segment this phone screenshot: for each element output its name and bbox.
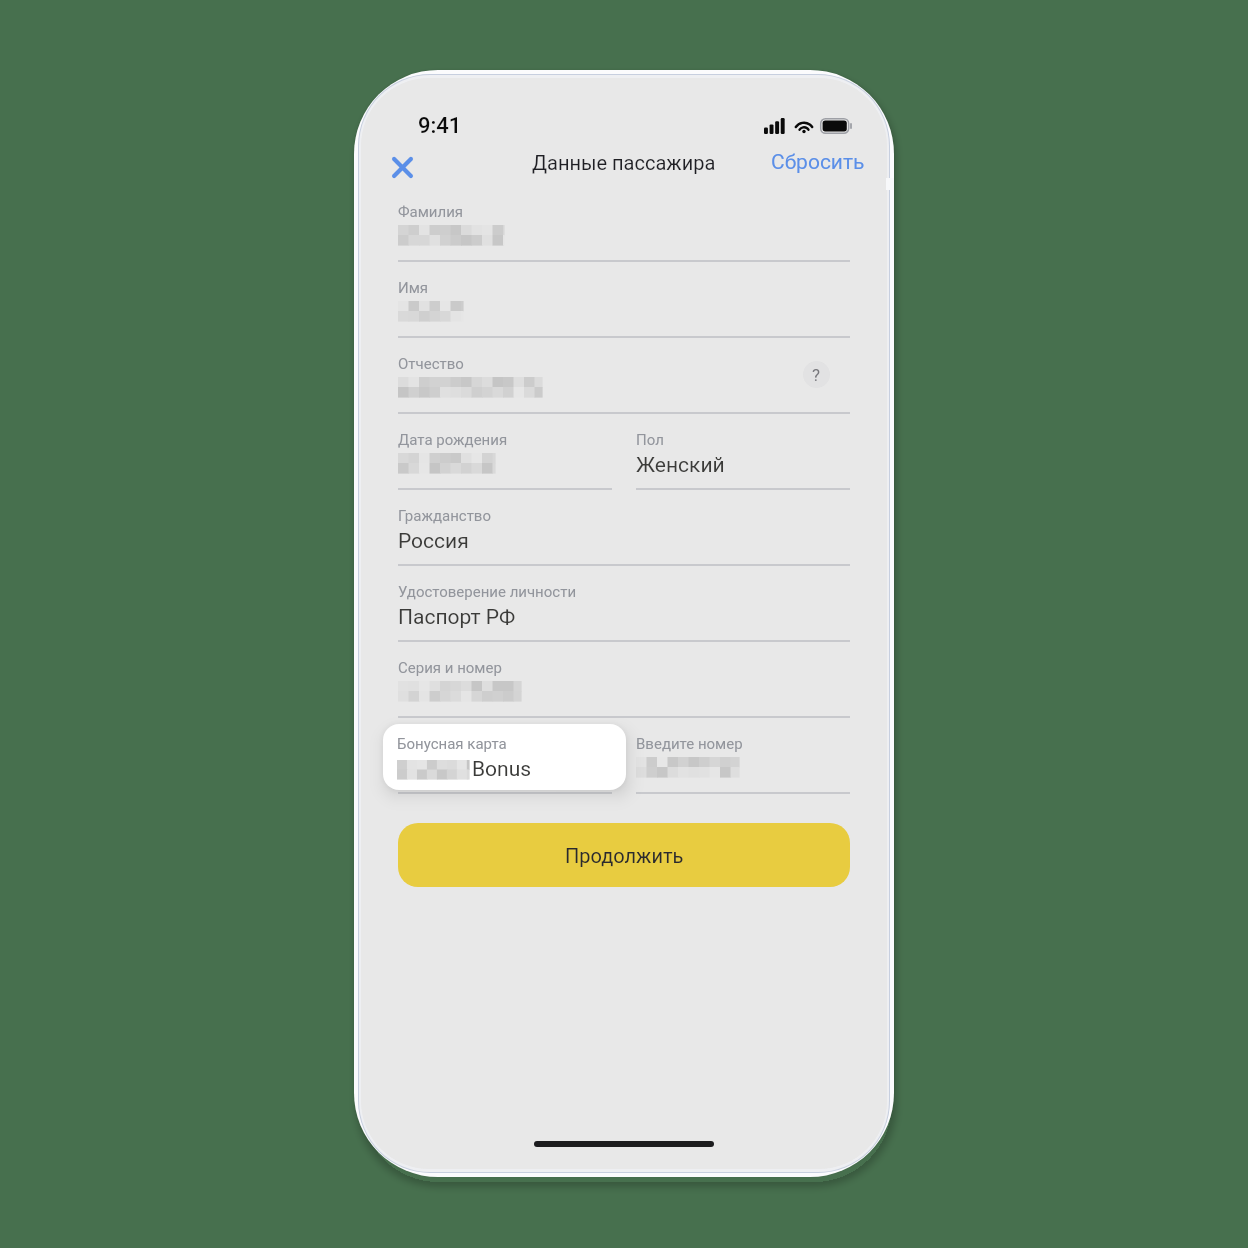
button[interactable]: Close <box>381 146 423 188</box>
staticText: Бонусная карта <box>397 735 507 753</box>
staticText: ? <box>812 365 821 385</box>
staticText: 9:41 <box>418 113 462 139</box>
staticText: Дата рождения <box>398 431 508 449</box>
button[interactable]: Бонусная карта <box>383 724 626 790</box>
staticText: Фамилия <box>398 203 464 221</box>
staticText: Bonus <box>472 757 532 782</box>
staticText: Данные пассажира <box>532 151 716 174</box>
staticText: Сбросить <box>771 150 865 175</box>
staticText: Паспорт РФ <box>398 605 516 630</box>
staticText: Женский <box>636 453 725 478</box>
staticText: Россия <box>398 529 469 554</box>
button[interactable]: Help about patronymic <box>803 361 830 388</box>
staticText: Пол <box>636 431 664 449</box>
button[interactable]: Сбросить <box>767 144 869 181</box>
staticText: Гражданство <box>398 507 491 525</box>
staticText: Продолжить <box>565 844 684 867</box>
staticText: Серия и номер <box>398 659 502 677</box>
staticText: Удостоверение личности <box>398 583 577 601</box>
staticText: Отчество <box>398 355 464 373</box>
staticText: Имя <box>398 279 429 297</box>
button[interactable]: Продолжить <box>398 823 850 887</box>
staticText: Введите номер <box>636 735 743 753</box>
